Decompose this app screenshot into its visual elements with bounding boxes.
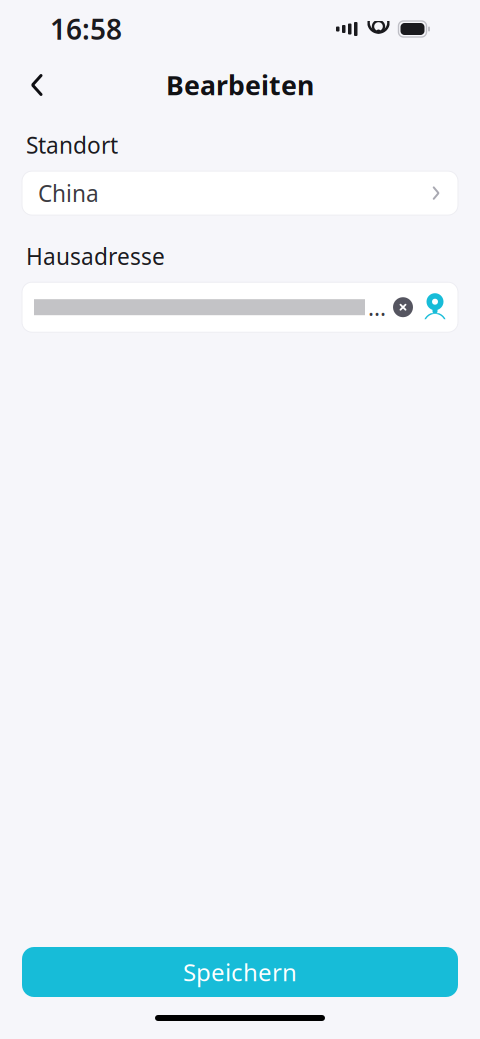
- staticText: China: [38, 178, 99, 208]
- button[interactable]: Clear: [386, 287, 420, 327]
- button[interactable]: Back: [15, 63, 59, 107]
- staticText: ...: [368, 292, 386, 322]
- staticText: Speichern: [183, 956, 297, 988]
- button[interactable]: China: [22, 171, 458, 215]
- staticText: Bearbeiten: [166, 67, 314, 103]
- button[interactable]: Use current location: [420, 287, 450, 327]
- staticText: Hausadresse: [26, 241, 165, 271]
- staticText: 16:58: [50, 10, 122, 48]
- button[interactable]: Speichern: [22, 947, 458, 997]
- staticText: Standort: [26, 130, 118, 160]
